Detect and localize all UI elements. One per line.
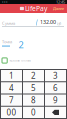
staticText: 5 bbox=[31, 83, 36, 93]
button[interactable]: 6 bbox=[45, 82, 66, 93]
button[interactable]: Далее bbox=[52, 5, 65, 12]
staticText: 4 bbox=[9, 83, 14, 93]
staticText: Тестовая оплата bbox=[9, 59, 30, 62]
staticText: руб bbox=[57, 22, 62, 25]
staticText: 6 bbox=[53, 83, 58, 93]
staticText: 0 bbox=[31, 107, 36, 118]
button[interactable]: Тестовая оплата bbox=[0, 56, 67, 65]
staticText: 1 bbox=[9, 70, 14, 81]
button[interactable]: 3 bbox=[45, 70, 66, 81]
button[interactable]: 9 bbox=[45, 94, 66, 106]
staticText: Сумма bbox=[2, 20, 15, 26]
staticText: Точка bbox=[2, 39, 12, 44]
staticText: LifePay bbox=[25, 4, 47, 13]
button[interactable]: 4 bbox=[1, 82, 22, 93]
button[interactable]: Точка bbox=[2, 39, 12, 46]
staticText: 9 bbox=[53, 95, 58, 105]
staticText: 12:45 bbox=[56, 0, 65, 5]
button[interactable]: 0 bbox=[23, 107, 44, 118]
button[interactable]: 2 bbox=[23, 70, 44, 81]
button[interactable]: 00 bbox=[1, 107, 22, 118]
button[interactable]: 8 bbox=[23, 94, 44, 106]
staticText: Далее bbox=[53, 6, 64, 11]
staticText: 3 bbox=[53, 70, 58, 81]
staticText: 2 bbox=[18, 38, 23, 51]
staticText: 8 bbox=[31, 95, 36, 105]
staticText: ••• bbox=[2, 0, 8, 5]
staticText: 132.00 bbox=[40, 18, 56, 25]
button[interactable]: 5 bbox=[23, 82, 44, 93]
staticText: 7 bbox=[9, 95, 14, 105]
button[interactable]: 7 bbox=[1, 94, 22, 106]
staticText: 2 bbox=[31, 70, 36, 81]
staticText: 00 bbox=[6, 107, 16, 118]
button[interactable]: Delete bbox=[45, 107, 66, 118]
button[interactable]: 1 bbox=[1, 70, 22, 81]
